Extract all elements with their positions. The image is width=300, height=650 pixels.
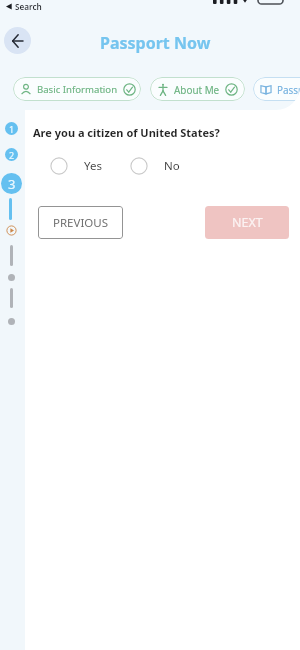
staticText: No: [164, 158, 180, 174]
staticText: Passport: [277, 83, 300, 96]
staticText: NEXT: [232, 214, 263, 231]
button[interactable]: 1: [5, 122, 18, 135]
staticText: 2: [9, 149, 15, 161]
staticText: 3: [8, 175, 16, 193]
staticText: Passport Now: [100, 32, 211, 54]
button[interactable]: No: [130, 156, 180, 176]
staticText: Search: [15, 1, 42, 12]
button[interactable]: Basic Information: [13, 77, 141, 101]
staticText: Basic Information: [37, 83, 118, 96]
button[interactable]: 2: [5, 148, 18, 161]
button[interactable]: Yes: [50, 156, 102, 176]
button[interactable]: 3: [1, 173, 22, 194]
button[interactable]: NEXT: [205, 206, 289, 239]
button[interactable]: Back: [4, 27, 31, 54]
button[interactable]: Passport: [253, 77, 300, 101]
staticText: Yes: [84, 158, 102, 174]
button[interactable]: PREVIOUS: [38, 206, 123, 239]
staticText: About Me: [174, 83, 220, 96]
button[interactable]: About Me: [150, 77, 245, 101]
staticText: PREVIOUS: [53, 215, 109, 231]
staticText: Are you a citizen of United States?: [33, 125, 220, 140]
staticText: 1: [9, 123, 15, 135]
